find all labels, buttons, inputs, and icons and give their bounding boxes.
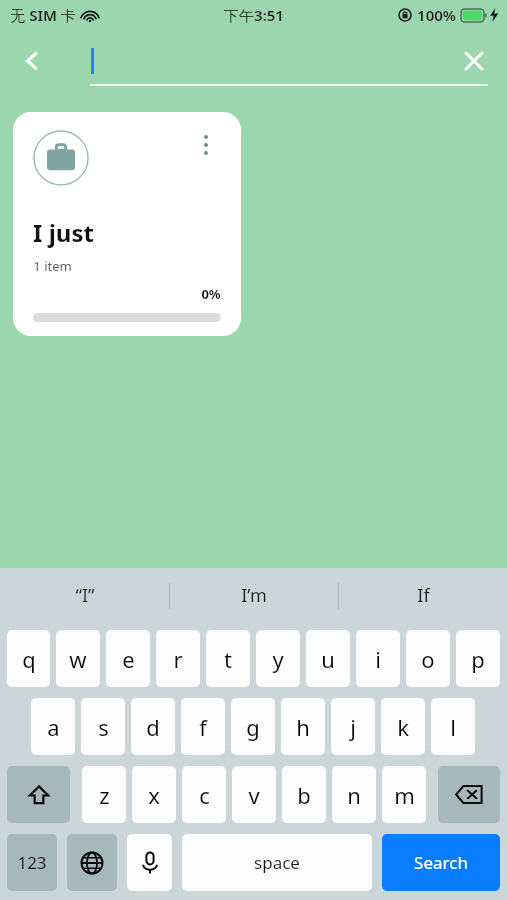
- button[interactable]: k: [381, 698, 425, 755]
- button[interactable]: I’m: [170, 568, 338, 623]
- button[interactable]: y: [256, 630, 300, 687]
- staticText: q: [22, 644, 36, 674]
- staticText: 100%: [417, 5, 456, 25]
- button[interactable]: i: [356, 630, 400, 687]
- staticText: b: [297, 780, 311, 810]
- staticText: I’m: [241, 583, 267, 608]
- button[interactable]: e: [106, 630, 150, 687]
- button[interactable]: Numbers: [7, 834, 57, 891]
- button[interactable]: z: [82, 766, 126, 823]
- staticText: t: [224, 644, 232, 674]
- button[interactable]: “I”: [0, 568, 169, 623]
- staticText: v: [248, 780, 260, 810]
- staticText: k: [397, 712, 409, 742]
- button[interactable]: a: [31, 698, 75, 755]
- button[interactable]: c: [182, 766, 226, 823]
- staticText: n: [347, 780, 361, 810]
- button[interactable]: Search: [382, 834, 500, 891]
- staticText: 123: [17, 851, 47, 874]
- staticText: p: [471, 644, 485, 674]
- staticText: c: [199, 780, 210, 810]
- button[interactable]: g: [231, 698, 275, 755]
- staticText: 无 SIM 卡: [10, 5, 76, 25]
- button[interactable]: t: [206, 630, 250, 687]
- button[interactable]: q: [7, 630, 50, 687]
- staticText: “I”: [75, 583, 95, 608]
- staticText: 下午3:51: [224, 5, 284, 25]
- staticText: u: [321, 644, 335, 674]
- button[interactable]: Change keyboard: [67, 834, 117, 891]
- staticText: y: [272, 644, 284, 674]
- staticText: space: [254, 851, 300, 874]
- button[interactable]: Dictate: [127, 834, 172, 891]
- button[interactable]: f: [181, 698, 225, 755]
- button[interactable]: If: [339, 568, 507, 623]
- button[interactable]: Clear: [451, 38, 497, 84]
- button[interactable]: More options: [191, 130, 221, 160]
- staticText: i: [375, 644, 381, 674]
- button[interactable]: o: [406, 630, 450, 687]
- staticText: Search: [414, 851, 468, 874]
- button[interactable]: x: [132, 766, 176, 823]
- staticText: e: [122, 644, 135, 674]
- button[interactable]: b: [282, 766, 326, 823]
- button[interactable]: u: [306, 630, 350, 687]
- staticText: o: [421, 644, 435, 674]
- button[interactable]: s: [81, 698, 125, 755]
- button[interactable]: w: [56, 630, 100, 687]
- staticText: If: [417, 583, 430, 608]
- staticText: h: [296, 712, 310, 742]
- staticText: I just: [33, 216, 94, 249]
- button[interactable]: space: [182, 834, 372, 891]
- button[interactable]: d: [131, 698, 175, 755]
- staticText: m: [394, 780, 415, 810]
- staticText: a: [47, 712, 60, 742]
- staticText: g: [246, 712, 260, 742]
- staticText: 0%: [201, 285, 221, 303]
- staticText: f: [199, 712, 207, 742]
- button[interactable]: n: [332, 766, 376, 823]
- button[interactable]: l: [431, 698, 475, 755]
- button[interactable]: Shift: [7, 766, 70, 823]
- button[interactable]: m: [382, 766, 426, 823]
- button[interactable]: r: [156, 630, 200, 687]
- staticText: z: [99, 780, 110, 810]
- staticText: r: [173, 644, 183, 674]
- button[interactable]: More options: [13, 112, 241, 336]
- button[interactable]: p: [456, 630, 500, 687]
- staticText: s: [98, 712, 109, 742]
- staticText: w: [69, 644, 87, 674]
- button[interactable]: v: [232, 766, 276, 823]
- button[interactable]: Backspace: [438, 766, 500, 823]
- button[interactable]: Back: [8, 37, 56, 85]
- staticText: d: [146, 712, 160, 742]
- staticText: j: [350, 712, 356, 742]
- staticText: 1 item: [33, 257, 72, 275]
- staticText: l: [450, 712, 456, 742]
- staticText: x: [148, 780, 160, 810]
- button[interactable]: h: [281, 698, 325, 755]
- button[interactable]: j: [331, 698, 375, 755]
